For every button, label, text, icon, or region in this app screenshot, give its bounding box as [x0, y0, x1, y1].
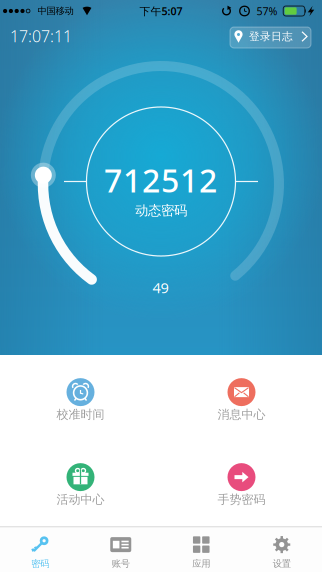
staticText: 17:07:11	[10, 25, 72, 47]
button[interactable]: 消息中心	[196, 378, 286, 422]
staticText: 校准时间	[56, 407, 104, 422]
button[interactable]: 手势密码	[196, 463, 286, 507]
staticText: 设置	[273, 558, 291, 569]
button[interactable]: 设置	[241, 527, 322, 572]
staticText: 密码	[31, 558, 49, 569]
staticText: 712512	[104, 159, 217, 201]
button[interactable]: 校准时间	[35, 378, 125, 422]
staticText: 应用	[192, 558, 210, 569]
button[interactable]: 应用	[161, 527, 241, 572]
staticText: 49	[152, 278, 168, 297]
button[interactable]: 活动中心	[35, 463, 125, 507]
button[interactable]: 密码	[0, 527, 80, 572]
staticText: 57%	[256, 4, 277, 18]
staticText: 动态密码	[135, 202, 187, 219]
staticText: 账号	[112, 558, 130, 569]
staticText: 中国移动	[37, 5, 73, 17]
staticText: 消息中心	[217, 407, 265, 422]
staticText: 活动中心	[56, 492, 104, 507]
staticText: 手势密码	[217, 492, 265, 507]
staticText: 下午5:07	[139, 4, 182, 18]
staticText: 登录日志	[249, 30, 293, 43]
button[interactable]: 账号	[80, 527, 161, 572]
button[interactable]: 登录日志	[230, 27, 311, 48]
